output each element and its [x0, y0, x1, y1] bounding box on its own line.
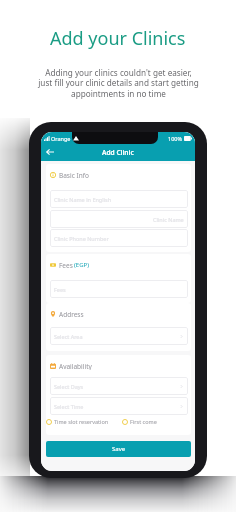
button[interactable]: Select Days — [50, 377, 188, 395]
button[interactable]: Back — [42, 144, 57, 159]
staticText: Select Area — [54, 333, 83, 340]
staticText: 100% — [168, 135, 183, 142]
staticText: First come — [130, 418, 157, 425]
staticText: Time slot reservation — [54, 418, 109, 425]
staticText: Fees — [54, 286, 66, 293]
staticText: Add your Clinics — [50, 26, 186, 51]
staticText: Clinic Phone Number — [54, 235, 109, 242]
staticText: Clinic Name — [153, 216, 184, 223]
button[interactable]: Save — [46, 441, 191, 457]
button[interactable]: Time slot reservation — [46, 418, 109, 425]
button[interactable]: Fees — [50, 280, 188, 298]
button[interactable]: Select Time — [50, 397, 188, 415]
button[interactable]: Clinic Name in English — [50, 190, 188, 208]
button[interactable]: Clinic Name — [50, 210, 188, 228]
staticText: Availability — [59, 362, 92, 370]
staticText: Address — [59, 310, 84, 318]
button[interactable]: Select Area — [50, 327, 188, 345]
staticText: Basic Info — [59, 171, 89, 179]
staticText: Add Clinic — [102, 148, 134, 157]
staticText: Save — [112, 445, 126, 453]
staticText: Orange — [51, 135, 71, 142]
staticText: Clinic Name in English — [54, 196, 112, 203]
staticText: Select Days — [54, 383, 84, 390]
staticText: Fees — [59, 261, 73, 269]
staticText: Adding your clinics couldn't get easier,… — [38, 67, 199, 100]
button[interactable]: Clinic Phone Number — [50, 229, 188, 247]
button[interactable]: First come — [122, 418, 157, 425]
staticText: Select Time — [54, 403, 84, 410]
staticText: (EGP) — [74, 261, 89, 269]
